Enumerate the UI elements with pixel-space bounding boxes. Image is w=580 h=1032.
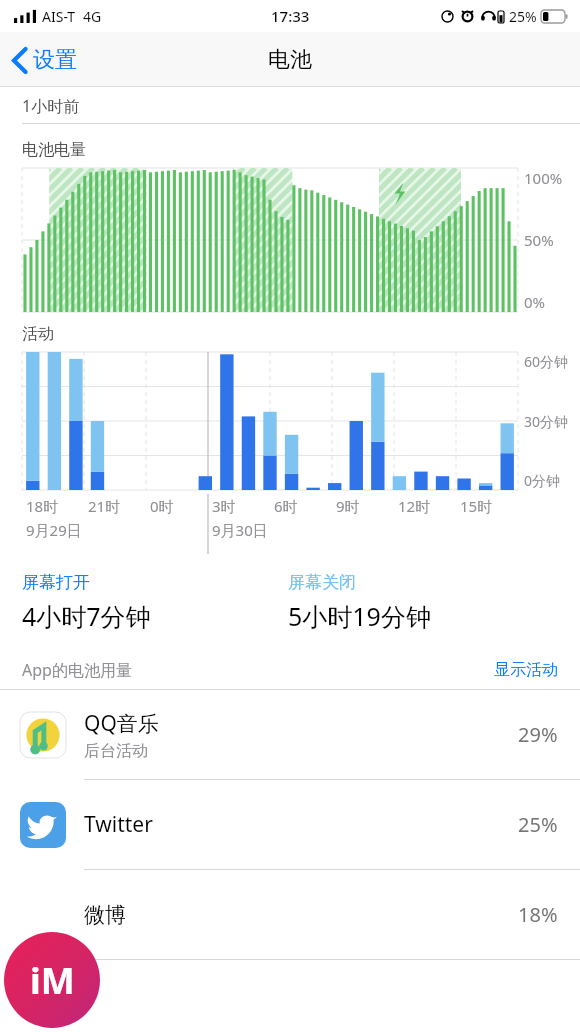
staticText: 15时: [460, 496, 493, 516]
staticText: 4小时7分钟: [22, 599, 151, 633]
staticText: 100%: [524, 168, 563, 188]
button[interactable]: 设置: [0, 40, 89, 80]
staticText: 6时: [274, 496, 298, 516]
staticText: 后台活动: [84, 741, 148, 761]
staticText: QQ音乐: [84, 709, 159, 738]
staticText: 屏幕打开: [22, 572, 90, 593]
staticText: 29%: [518, 721, 558, 748]
staticText: Twitter: [84, 810, 153, 839]
staticText: 17:33: [271, 6, 310, 26]
staticText: 25%: [509, 7, 537, 26]
staticText: 18时: [26, 496, 59, 516]
staticText: iM: [30, 956, 75, 1005]
staticText: 60分钟: [524, 352, 569, 371]
staticText: 21时: [88, 496, 121, 516]
button[interactable]: 微博: [0, 870, 580, 959]
staticText: 9月30日: [212, 520, 268, 540]
other: QQ音乐: [20, 712, 66, 758]
staticText: 5小时19分钟: [288, 599, 431, 633]
staticText: 0分钟: [524, 471, 561, 490]
staticText: 9月29日: [26, 520, 82, 540]
other: Twitter: [20, 802, 66, 848]
staticText: 12时: [398, 496, 431, 516]
staticText: 4G: [83, 7, 102, 26]
staticText: 25%: [518, 811, 558, 838]
staticText: 设置: [33, 46, 77, 74]
staticText: App的电池用量: [22, 659, 132, 681]
staticText: 0时: [150, 496, 174, 516]
button[interactable]: 显示活动: [494, 660, 558, 680]
staticText: 电池: [268, 46, 312, 74]
staticText: AIS-T: [42, 7, 76, 26]
staticText: 1小时前: [22, 95, 80, 117]
staticText: 18%: [518, 901, 558, 928]
staticText: 电池电量: [22, 140, 86, 160]
button[interactable]: Twitter: [0, 780, 580, 869]
staticText: 0%: [524, 292, 546, 312]
staticText: 活动: [22, 324, 54, 344]
staticText: 50%: [524, 230, 554, 250]
staticText: 显示活动: [494, 660, 558, 680]
staticText: 9时: [336, 496, 360, 516]
staticText: 30分钟: [524, 412, 569, 431]
staticText: 微博: [84, 902, 126, 928]
staticText: 3时: [212, 496, 236, 516]
button[interactable]: QQ音乐: [0, 690, 580, 779]
staticText: 屏幕关闭: [288, 572, 356, 593]
